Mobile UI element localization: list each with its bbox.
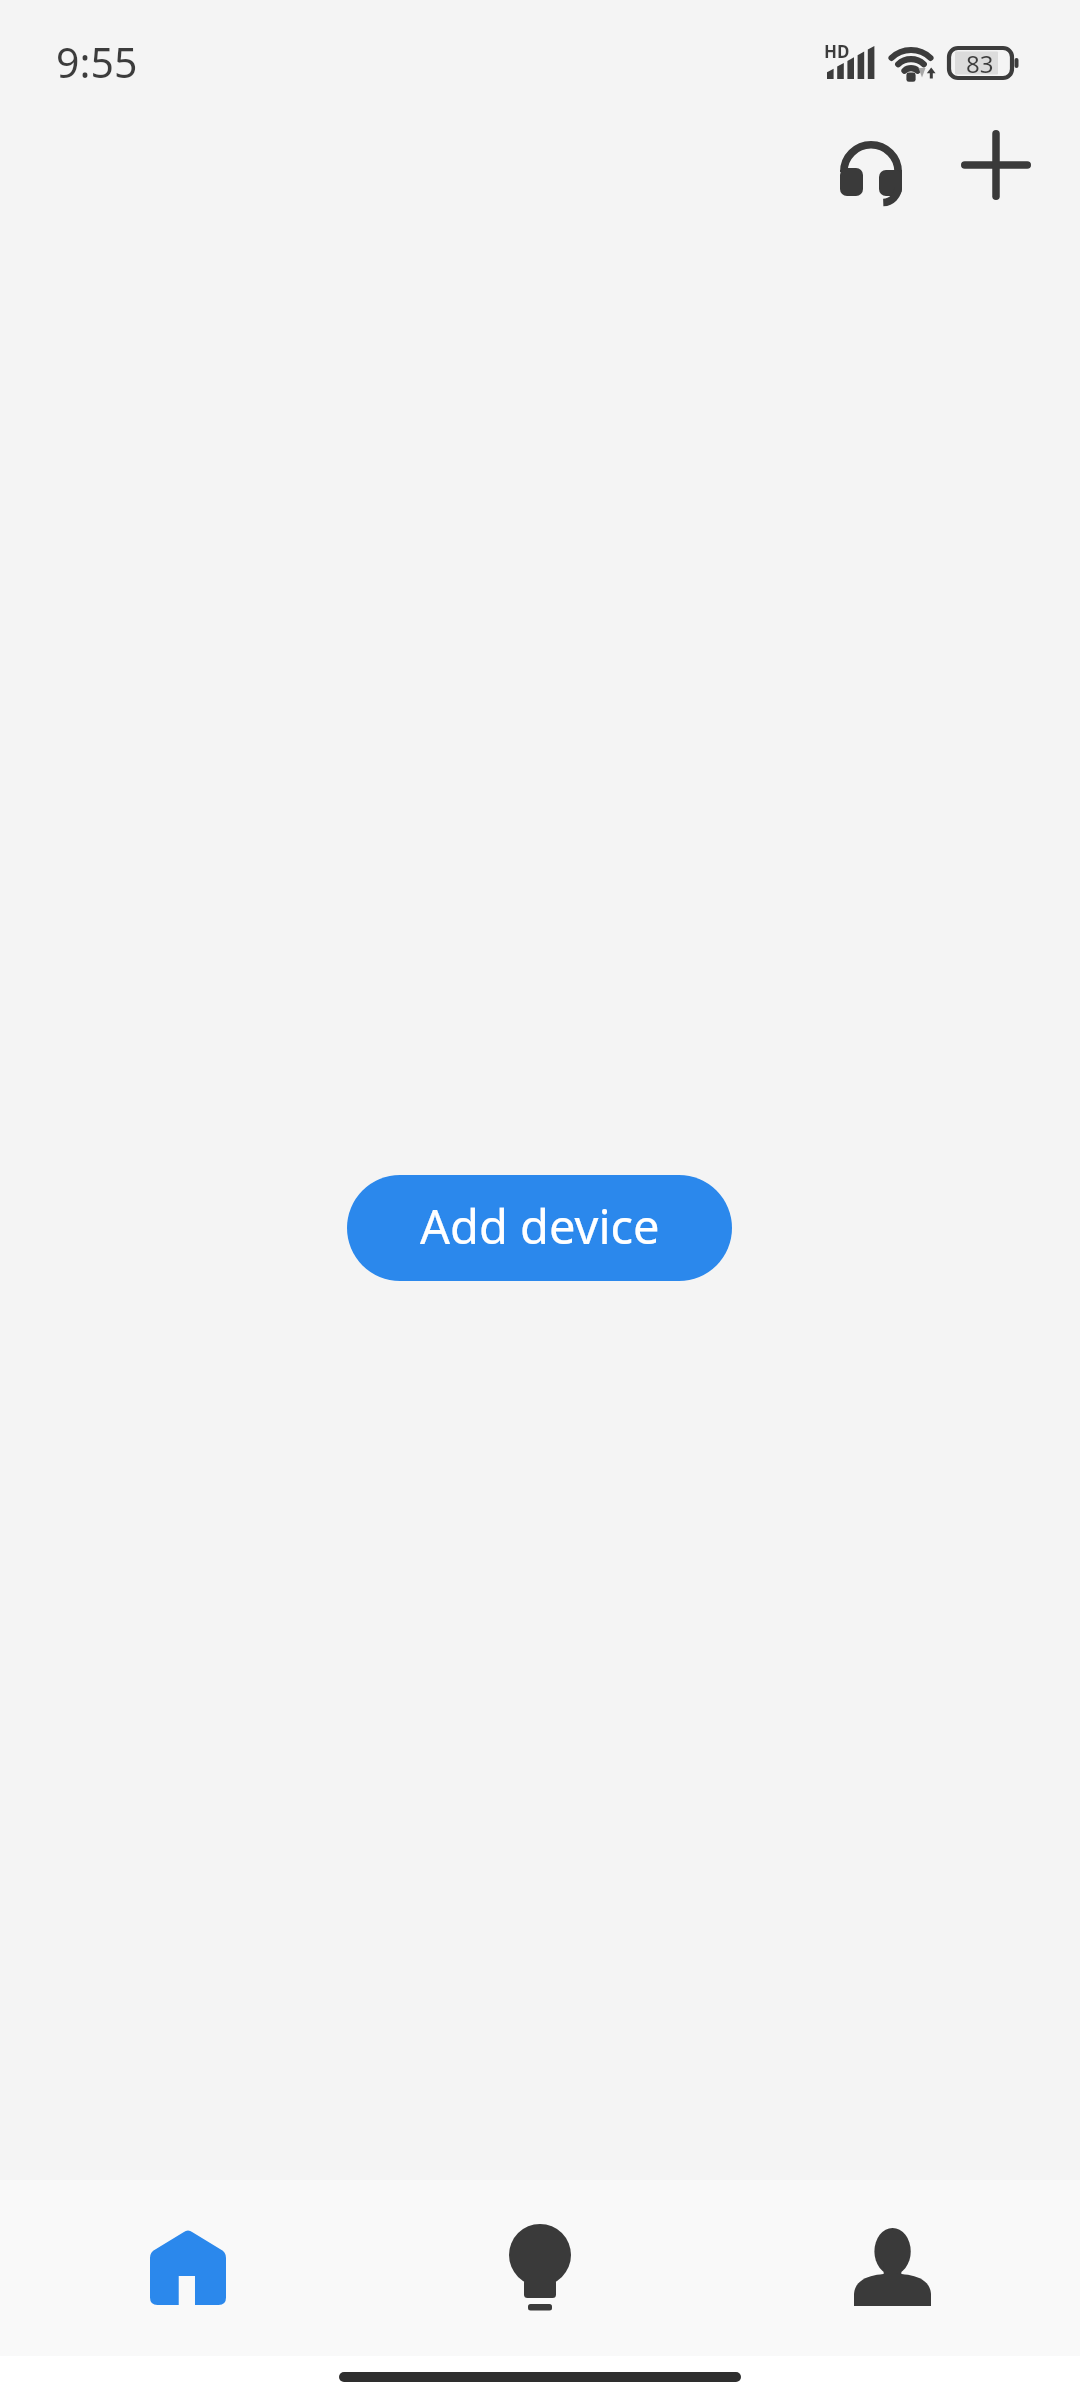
button[interactable]: Customer support xyxy=(819,121,923,225)
staticText: 83 xyxy=(966,47,994,80)
button[interactable]: Add device xyxy=(347,1175,732,1281)
staticText: HD xyxy=(824,40,850,63)
button[interactable]: Tips xyxy=(360,2180,720,2356)
button[interactable]: Profile xyxy=(720,2180,1080,2356)
button[interactable]: Add device xyxy=(944,113,1048,217)
button[interactable]: Home xyxy=(0,2180,360,2356)
staticText: Add device xyxy=(420,1194,660,1258)
staticText: 9:55 xyxy=(56,34,138,90)
